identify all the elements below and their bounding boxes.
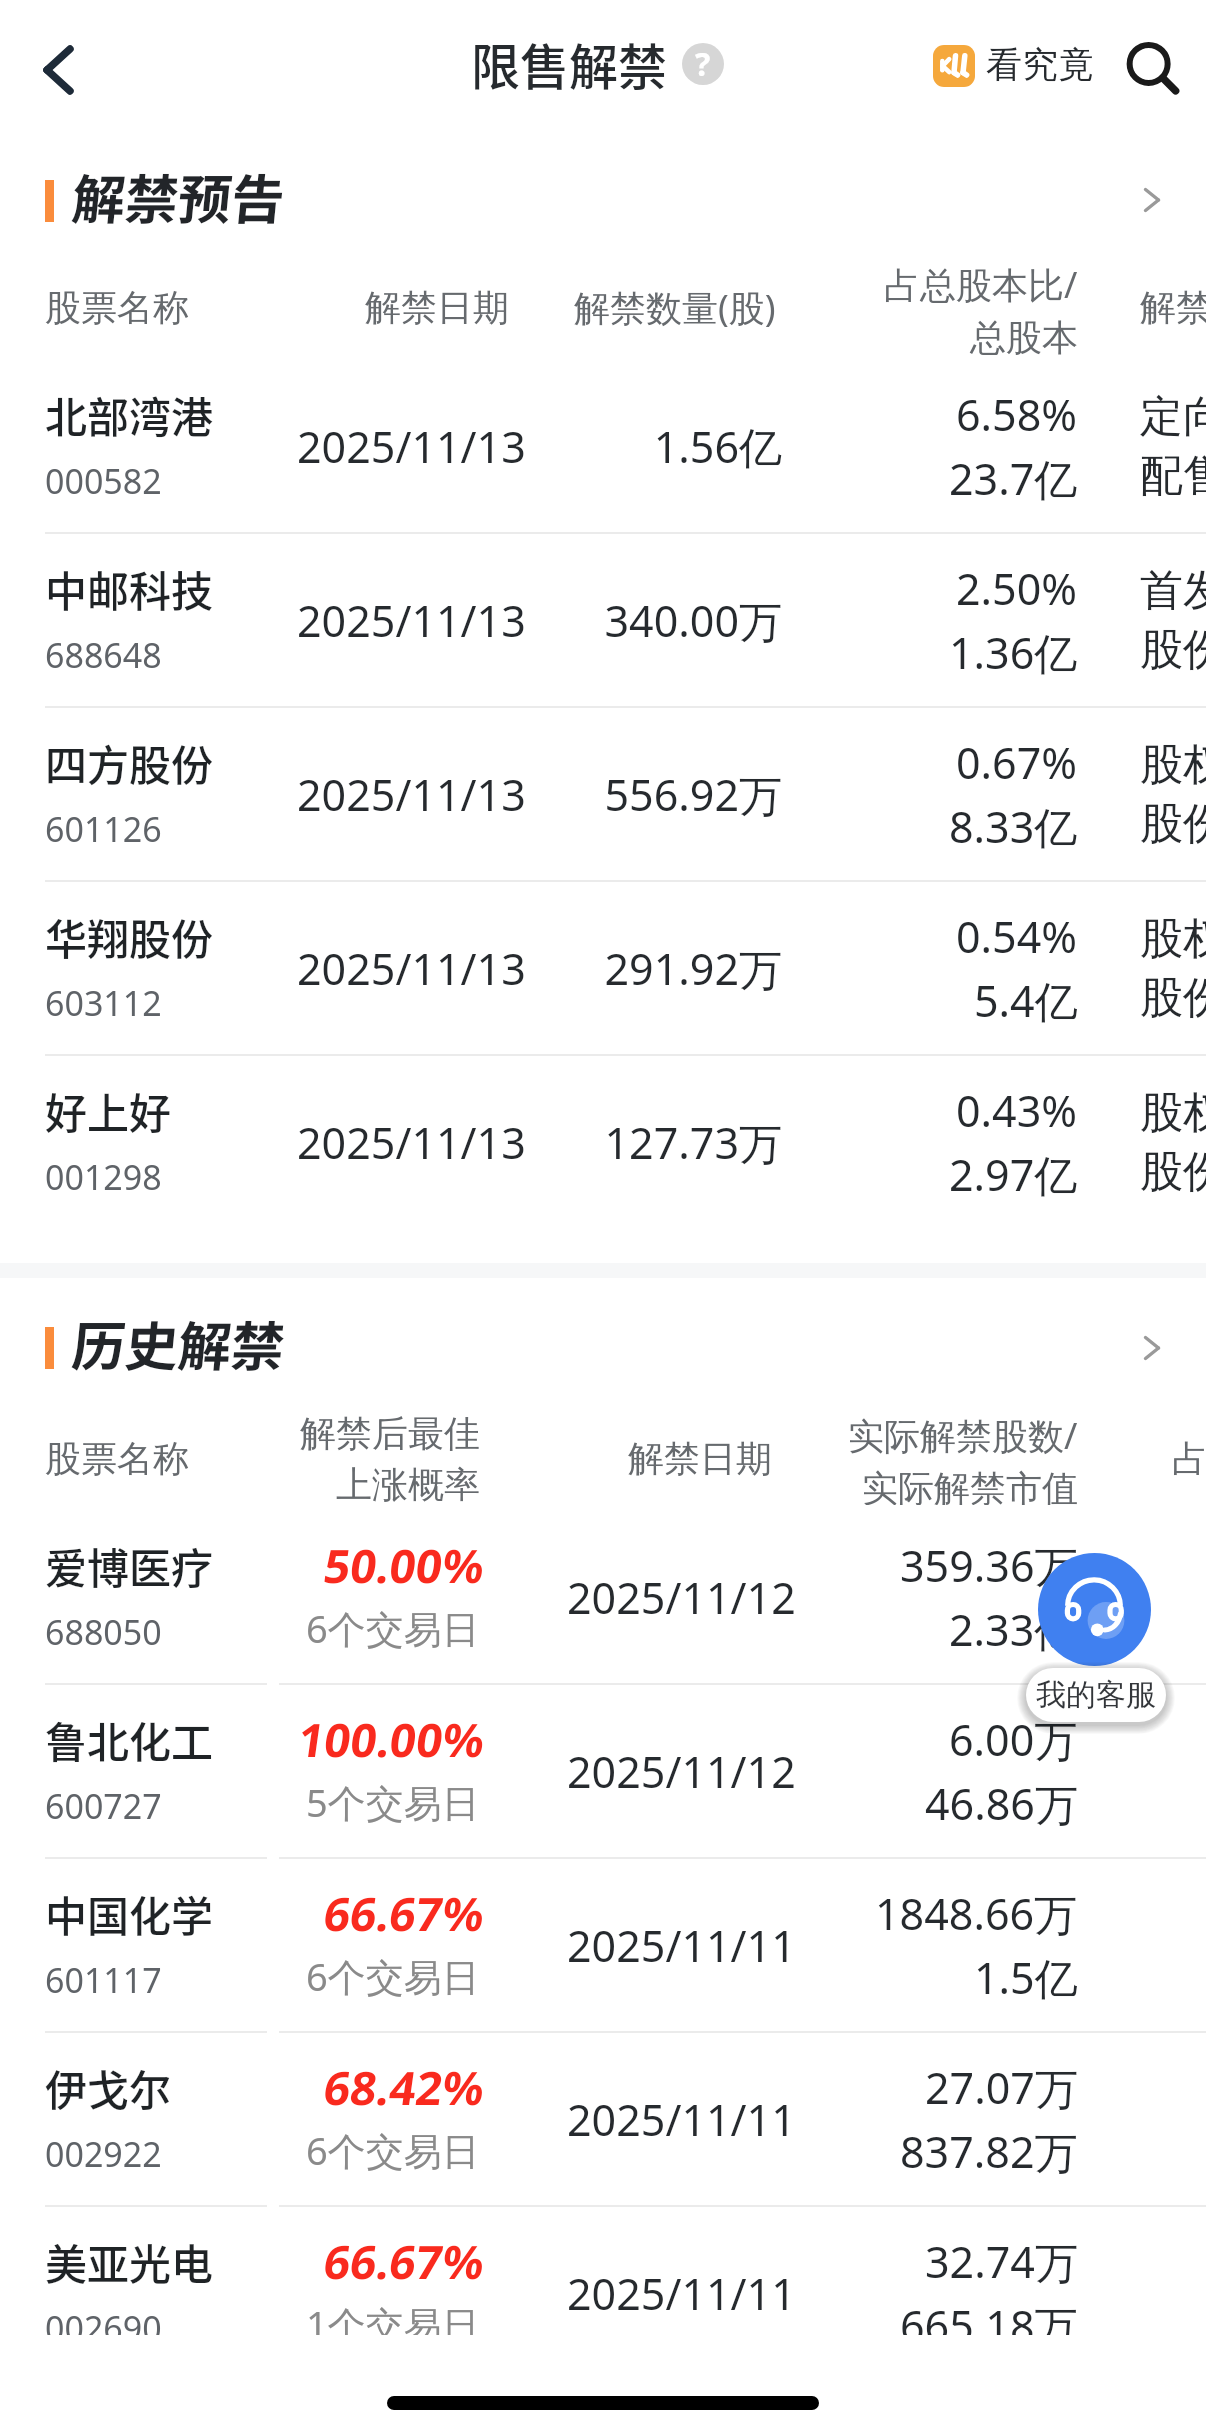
staticText: 0.43% [956, 1081, 1078, 1140]
staticText: 001298 [45, 1154, 162, 1200]
staticText: 1848.66万 [875, 1884, 1078, 1943]
staticText: 66.67% [320, 1882, 480, 1945]
staticText: 首发 [1140, 564, 1206, 618]
staticText: 鲁北化工 [45, 1709, 214, 1770]
staticText: 2.50% [956, 559, 1078, 618]
staticText: 556.92万 [560, 765, 782, 824]
button[interactable]: Customer service [1038, 1553, 1151, 1666]
staticText: 解禁日期 [628, 1436, 772, 1481]
button[interactable]: 看究竟 [933, 43, 1094, 88]
staticText: 2025/11/11 [567, 1916, 796, 1975]
staticText: 2.33亿 [949, 1600, 1078, 1659]
staticText: 2.97亿 [949, 1145, 1078, 1204]
button[interactable]: 我的客服 [1026, 1668, 1166, 1722]
button[interactable]: 好上好 [0, 1056, 1206, 1228]
button[interactable]: Search [1124, 37, 1180, 93]
staticText: 爱博医疗 [45, 1535, 214, 1596]
staticText: 北部湾港 [45, 384, 214, 445]
staticText: 688050 [45, 1609, 162, 1655]
staticText: 2025/11/13 [297, 417, 526, 476]
staticText: 2025/11/13 [297, 1113, 526, 1172]
staticText: 占总股本比/ [884, 260, 1078, 309]
staticText: 上涨概率 [336, 1462, 480, 1505]
staticText: 解禁 [1140, 285, 1206, 330]
staticText: 100.00% [294, 1708, 480, 1771]
staticText: 2025/11/12 [567, 1568, 796, 1627]
staticText: 66.67% [320, 2230, 480, 2293]
staticText: 127.73万 [560, 1113, 782, 1172]
staticText: 688648 [45, 632, 162, 678]
staticText: 好上好 [45, 1080, 172, 1141]
button[interactable]: 历史解禁 [0, 1278, 1206, 1417]
staticText: 340.00万 [560, 591, 782, 650]
staticText: 华翔股份 [45, 906, 214, 967]
staticText: 6.00万 [949, 1710, 1078, 1769]
staticText: 6个交易日 [306, 2124, 480, 2176]
staticText: 50.00% [320, 1534, 480, 1597]
button[interactable]: 中邮科技 [0, 534, 1206, 706]
staticText: 2025/11/11 [567, 2264, 796, 2323]
staticText: 002690 [45, 2305, 162, 2335]
staticText: 实际解禁市值 [862, 1466, 1078, 1505]
button[interactable]: 中国化学 [0, 1859, 1206, 2031]
staticText: 限售解禁 [471, 28, 668, 99]
staticText: 解禁日期 [365, 285, 509, 330]
button[interactable]: Help [682, 43, 724, 85]
staticText: 美亚光电 [45, 2231, 214, 2292]
staticText: ? [695, 43, 711, 84]
staticText: 股票名称 [45, 285, 189, 330]
staticText: 8.33亿 [949, 797, 1078, 856]
staticText: 5个交易日 [306, 1776, 480, 1828]
button[interactable]: Back [12, 34, 84, 106]
button[interactable]: 解禁预告 [0, 140, 1206, 260]
staticText: 665.18万 [900, 2296, 1078, 2335]
staticText: 603112 [45, 980, 162, 1026]
staticText: 2025/11/13 [297, 939, 526, 998]
staticText: 解禁数量(股) [574, 283, 776, 332]
staticText: 解禁后最佳 [300, 1411, 480, 1456]
staticText: 我的客服 [1036, 1676, 1156, 1714]
staticText: 股份 [1140, 971, 1206, 1025]
staticText: 68.42% [320, 2056, 480, 2119]
button[interactable]: 美亚光电 [0, 2207, 1206, 2335]
staticText: 2025/11/13 [297, 765, 526, 824]
button[interactable]: 鲁北化工 [0, 1685, 1206, 1857]
staticText: 四方股份 [45, 732, 214, 793]
staticText: 股份 [1140, 623, 1206, 677]
button[interactable]: 爱博医疗 [0, 1511, 1206, 1683]
staticText: 定向 [1140, 390, 1206, 444]
staticText: 实际解禁股数/ [848, 1411, 1078, 1460]
staticText: 总股本 [970, 315, 1078, 360]
button[interactable]: 四方股份 [0, 708, 1206, 880]
staticText: 股份 [1140, 797, 1206, 851]
staticText: 002922 [45, 2131, 162, 2177]
staticText: 000582 [45, 458, 162, 504]
staticText: 5.4亿 [974, 971, 1078, 1030]
button[interactable]: 北部湾港 [0, 360, 1206, 532]
staticText: 配售 [1140, 449, 1206, 503]
staticText: 中国化学 [45, 1883, 214, 1944]
staticText: 看究竟 [986, 42, 1094, 87]
button[interactable]: 伊戈尔 [0, 2033, 1206, 2205]
staticText: 6个交易日 [306, 1950, 480, 2002]
staticText: 解禁预告 [69, 158, 281, 235]
staticText: 股票名称 [45, 1436, 189, 1481]
staticText: 32.74万 [925, 2232, 1078, 2291]
button[interactable]: 华翔股份 [0, 882, 1206, 1054]
staticText: 股份 [1140, 1145, 1206, 1199]
staticText: 600727 [45, 1783, 162, 1829]
staticText: 2025/11/13 [297, 591, 526, 650]
staticText: 291.92万 [560, 939, 782, 998]
staticText: 中邮科技 [45, 558, 214, 619]
staticText: 1个交易日 [306, 2298, 480, 2335]
staticText: 2025/11/12 [567, 1742, 796, 1801]
staticText: 占 [1172, 1436, 1206, 1481]
staticText: 2025/11/11 [567, 2090, 796, 2149]
staticText: 601117 [45, 1957, 162, 2003]
staticText: 1.36亿 [949, 623, 1078, 682]
staticText: 股权 [1140, 1086, 1206, 1140]
staticText: 837.82万 [900, 2122, 1078, 2181]
staticText: 股权 [1140, 738, 1206, 792]
staticText: 359.36万 [900, 1536, 1078, 1595]
staticText: 46.86万 [925, 1774, 1078, 1833]
